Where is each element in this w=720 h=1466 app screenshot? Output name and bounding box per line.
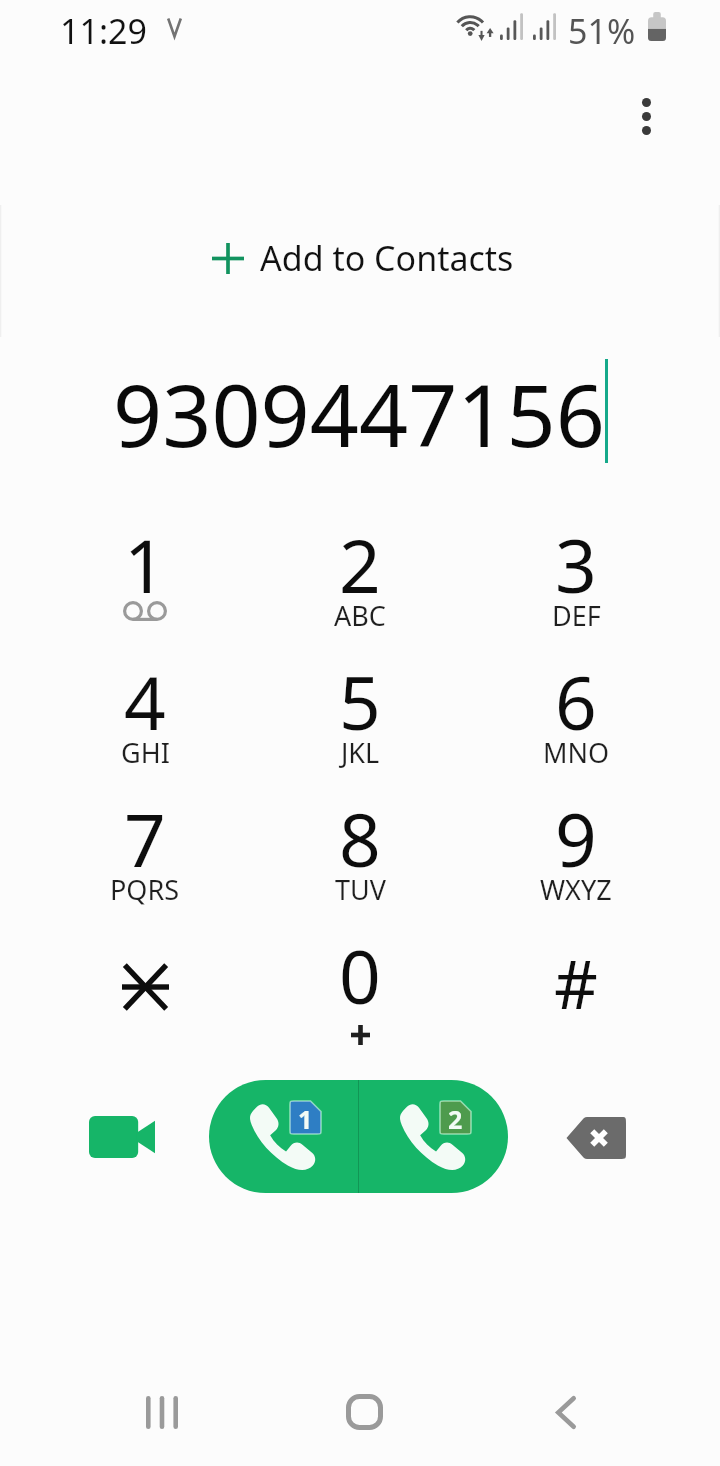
staticText: WXYZ <box>540 871 612 908</box>
button[interactable]: More options <box>618 88 675 145</box>
staticText: JKL <box>341 734 380 771</box>
staticText: 9 <box>555 789 597 888</box>
staticText: # <box>554 936 598 1029</box>
staticText: 9309447156 <box>113 355 605 467</box>
button[interactable]: 4 <box>37 653 253 790</box>
staticText: MNO <box>543 734 610 771</box>
button[interactable]: Call with SIM 1 <box>209 1080 358 1193</box>
button[interactable]: 2 <box>252 516 468 653</box>
staticText: 0 <box>339 926 381 1025</box>
staticText: 11:29 <box>60 8 147 54</box>
staticText: 2 <box>339 515 381 614</box>
button[interactable]: Back <box>521 1367 611 1457</box>
staticText: ABC <box>334 597 386 634</box>
button[interactable]: 1 <box>37 516 253 653</box>
button[interactable]: 3 <box>468 516 684 653</box>
staticText: 5 <box>339 652 381 751</box>
staticText: TUV <box>335 871 386 908</box>
button[interactable]: 5 <box>252 653 468 790</box>
button[interactable]: Backspace <box>559 1102 631 1174</box>
staticText: DEF <box>552 597 601 634</box>
button[interactable]: Add to Contacts <box>0 205 720 337</box>
button[interactable]: Call with SIM 2 <box>359 1080 508 1193</box>
staticText: 51% <box>568 8 636 54</box>
staticText: 3 <box>555 515 597 614</box>
button[interactable]: 8 <box>252 790 468 927</box>
button[interactable]: 9 <box>468 790 684 927</box>
staticText: 7 <box>124 789 166 888</box>
button[interactable] <box>37 927 253 1064</box>
button[interactable]: Recents <box>117 1367 207 1457</box>
button[interactable]: Home <box>319 1367 409 1457</box>
button[interactable]: 0 <box>252 927 468 1064</box>
staticText: 4 <box>124 652 166 751</box>
staticText: 6 <box>555 652 597 751</box>
staticText: Add to Contacts <box>260 235 514 281</box>
button[interactable]: 6 <box>468 653 684 790</box>
staticText: 8 <box>339 789 381 888</box>
staticText: 1 <box>124 515 166 614</box>
staticText: GHI <box>121 734 170 771</box>
staticText: PQRS <box>110 871 180 908</box>
staticText: 2 <box>448 1102 463 1135</box>
staticText: 1 <box>298 1102 313 1135</box>
button[interactable]: 7 <box>37 790 253 927</box>
button[interactable]: # <box>468 927 684 1064</box>
button[interactable]: Video call <box>86 1101 158 1173</box>
